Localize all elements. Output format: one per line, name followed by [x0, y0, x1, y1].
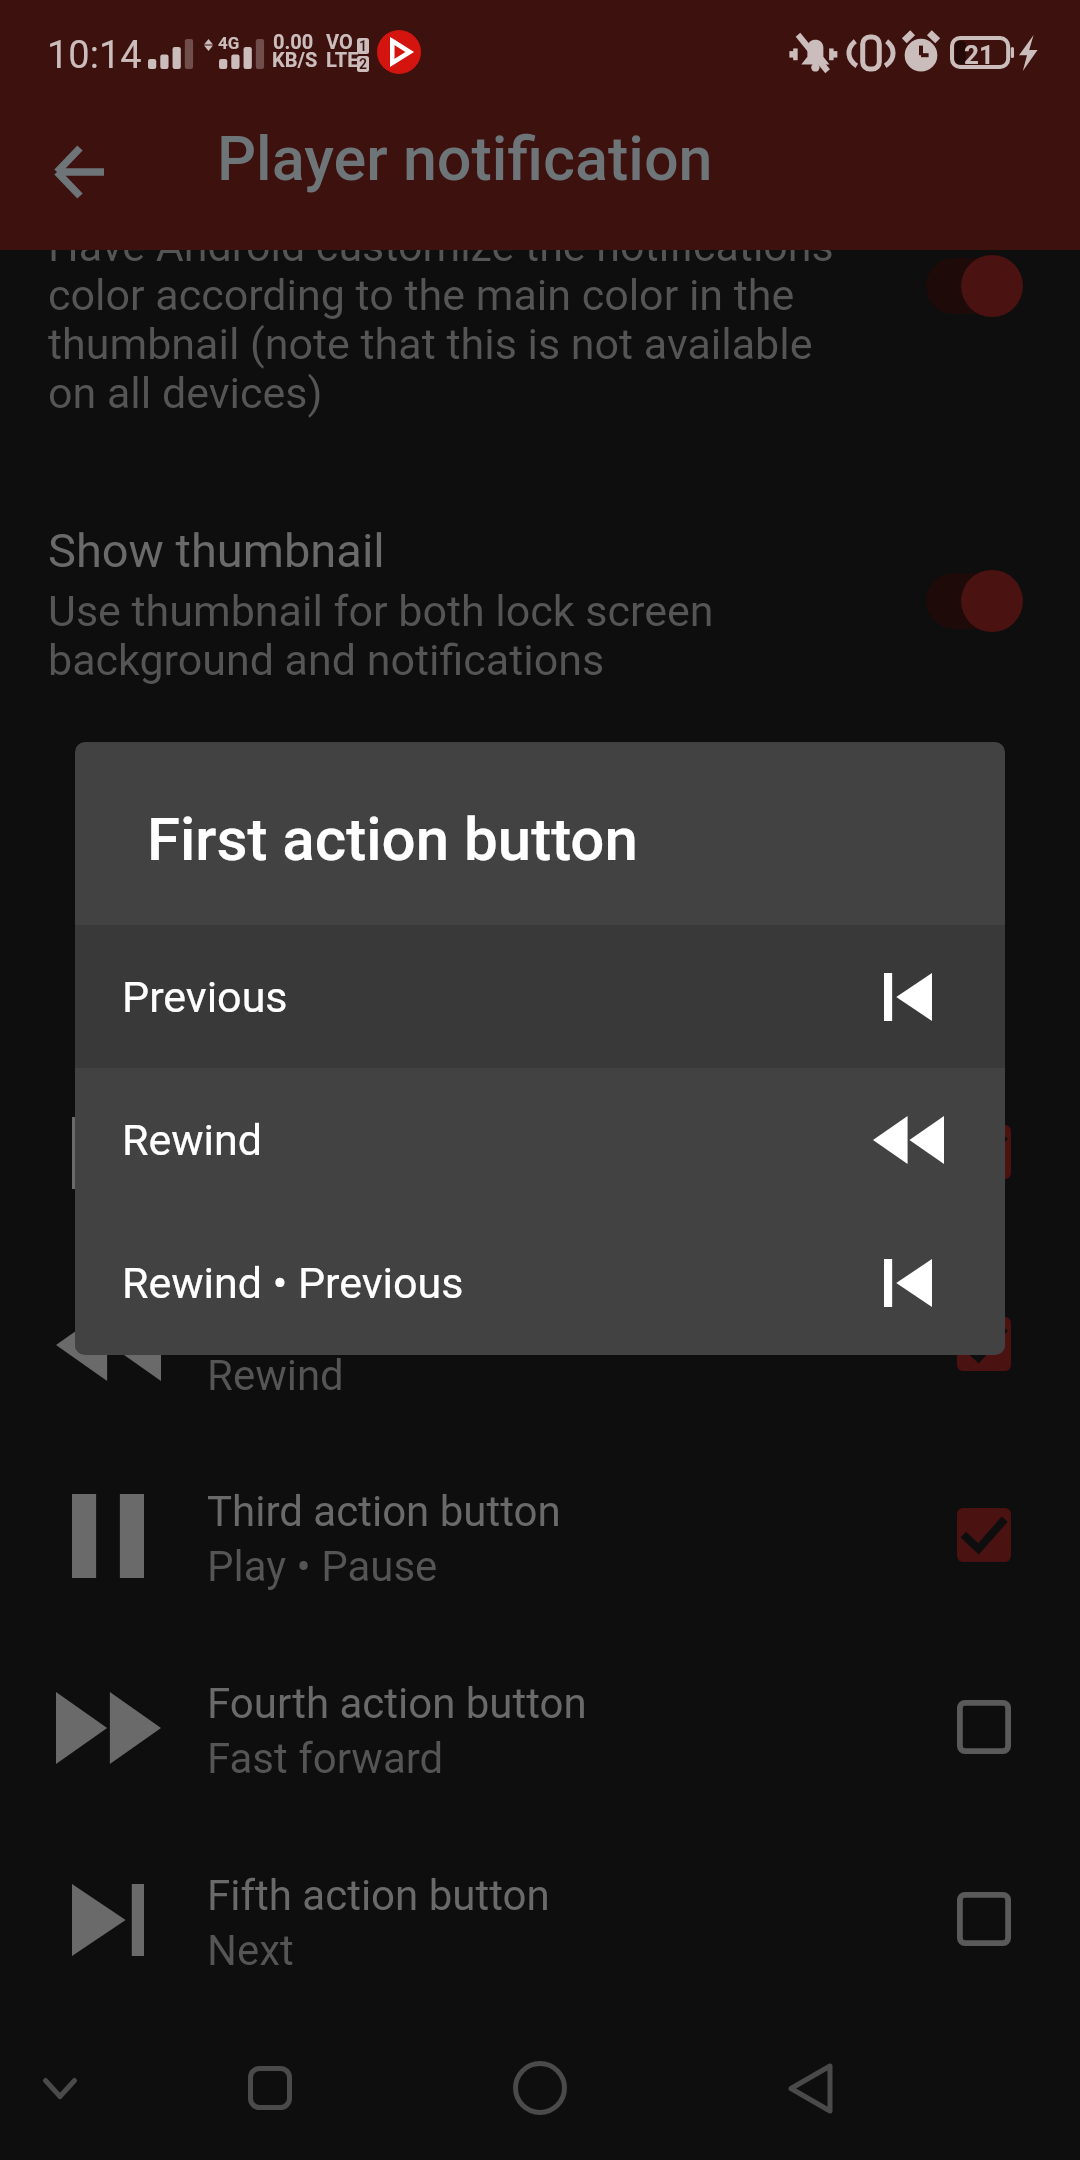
staticText: LTE	[326, 48, 359, 71]
button[interactable]: Unchecked	[957, 1892, 1011, 1946]
button[interactable]: Toggle	[900, 551, 1050, 651]
button[interactable]: Recent apps	[210, 2028, 330, 2148]
button[interactable]: Unchecked	[957, 1700, 1011, 1754]
button[interactable]: Checked	[957, 1317, 1011, 1371]
staticText: color according to the main color in the	[48, 270, 795, 320]
button[interactable]: Third action button	[0, 1414, 1080, 1605]
staticText: Previous	[122, 972, 288, 1022]
staticText: thumbnail (note that this is not availab…	[48, 319, 813, 369]
button[interactable]: Checked	[957, 1125, 1011, 1179]
staticText: Use thumbnail for both lock screen	[48, 586, 714, 636]
staticText: First action button	[147, 804, 638, 874]
button[interactable]: Checked	[957, 1508, 1011, 1562]
staticText: Fifth action button	[207, 1871, 550, 1920]
staticText: Second action button	[207, 1296, 605, 1345]
button[interactable]: Rewind	[75, 1068, 1005, 1211]
staticText: Show thumbnail	[48, 523, 385, 578]
button[interactable]: Rewind • Previous	[75, 1211, 1005, 1354]
button[interactable]: Previous	[75, 925, 1005, 1068]
staticText: Rewind	[122, 1115, 263, 1165]
staticText: Rewind	[207, 1351, 344, 1400]
button[interactable]: Fifth action button	[0, 1798, 1080, 1989]
staticText: First action button	[207, 1104, 548, 1153]
staticText: Player notification	[217, 123, 713, 194]
button[interactable]: Fourth action button	[0, 1606, 1080, 1797]
staticText: Fast forward	[207, 1734, 444, 1783]
button[interactable]: Home	[480, 2028, 600, 2148]
staticText: 10:14	[47, 33, 142, 78]
button[interactable]: Toggle	[900, 236, 1050, 336]
staticText: 21	[964, 40, 994, 70]
staticText: background and notifications	[48, 635, 605, 685]
staticText: Rewind • Previous	[122, 1258, 464, 1308]
staticText: Fourth action button	[207, 1679, 587, 1728]
staticText: 0.00	[273, 30, 314, 53]
staticText: on all devices)	[48, 368, 323, 418]
staticText: Play • Pause	[207, 1542, 438, 1591]
button[interactable]: Second action button	[0, 1223, 1080, 1414]
staticText: 1	[359, 38, 368, 54]
staticText: Third action button	[207, 1487, 561, 1536]
staticText: 4G	[218, 33, 240, 53]
button[interactable]: Back	[18, 110, 142, 234]
staticText: Have Android customize the notifications	[48, 221, 834, 271]
staticText: KB/S	[272, 48, 318, 71]
staticText: VO	[326, 30, 353, 53]
button[interactable]: Hide keyboard	[0, 2028, 120, 2148]
button[interactable]: Back	[750, 2028, 870, 2148]
staticText: 2	[359, 56, 368, 72]
button[interactable]: First action button	[0, 1031, 1080, 1222]
staticText: Next	[207, 1926, 294, 1975]
